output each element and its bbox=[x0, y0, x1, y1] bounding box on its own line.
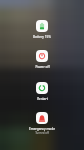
staticText: Battery 15% bbox=[33, 35, 51, 39]
staticText: Restart bbox=[37, 97, 48, 101]
button[interactable]: Power off bbox=[36, 50, 48, 62]
staticText: Turned off bbox=[35, 131, 49, 135]
button[interactable]: Battery 15% bbox=[36, 20, 48, 32]
staticText: Emergency mode bbox=[29, 127, 55, 131]
staticText: Power off bbox=[35, 65, 50, 69]
button[interactable]: Restart bbox=[36, 82, 48, 94]
button[interactable]: Emergency mode bbox=[36, 112, 48, 124]
